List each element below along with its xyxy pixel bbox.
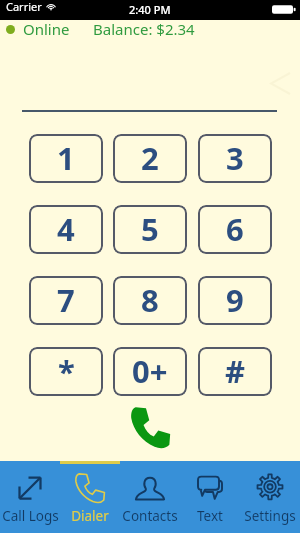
button[interactable]: Call xyxy=(124,401,176,453)
other: Backspace xyxy=(271,73,290,94)
staticText: Online xyxy=(23,19,70,39)
button[interactable]: Dialer xyxy=(60,464,120,533)
staticText: 5 xyxy=(141,208,159,250)
staticText: 3 xyxy=(226,137,244,179)
button[interactable]: Settings xyxy=(240,464,300,533)
button[interactable]: Contacts xyxy=(120,464,180,533)
staticText: Carrier xyxy=(6,0,42,14)
button[interactable]: 3 xyxy=(198,134,272,183)
button[interactable]: * xyxy=(29,347,103,396)
button[interactable]: # xyxy=(198,347,272,396)
staticText: Call Logs xyxy=(2,507,59,525)
button[interactable]: 9 xyxy=(198,276,272,325)
staticText: # xyxy=(225,350,246,392)
button[interactable]: 8 xyxy=(113,276,187,325)
button[interactable]: Call Logs xyxy=(0,464,60,533)
staticText: Contacts xyxy=(122,507,178,525)
button[interactable]: 6 xyxy=(198,205,272,254)
button[interactable]: 0+ xyxy=(113,347,187,396)
staticText: Text xyxy=(197,507,223,525)
button[interactable]: 7 xyxy=(29,276,103,325)
staticText: 6 xyxy=(226,208,244,250)
button[interactable]: 1 xyxy=(29,134,103,183)
staticText: Balance: $2.34 xyxy=(93,19,195,39)
staticText: 2:40 PM xyxy=(129,2,171,17)
staticText: 4 xyxy=(57,208,75,250)
staticText: Dialer xyxy=(71,507,109,525)
staticText: Settings xyxy=(244,507,296,525)
staticText: 7 xyxy=(57,279,75,321)
staticText: 9 xyxy=(226,279,244,321)
staticText: 0+ xyxy=(132,350,168,392)
button[interactable]: 5 xyxy=(113,205,187,254)
button[interactable]: 4 xyxy=(29,205,103,254)
button[interactable]: 2 xyxy=(113,134,187,183)
staticText: 1 xyxy=(57,137,75,179)
staticText: 8 xyxy=(141,279,159,321)
staticText: * xyxy=(58,350,75,392)
staticText: 2 xyxy=(141,137,159,179)
button[interactable]: Text xyxy=(180,464,240,533)
